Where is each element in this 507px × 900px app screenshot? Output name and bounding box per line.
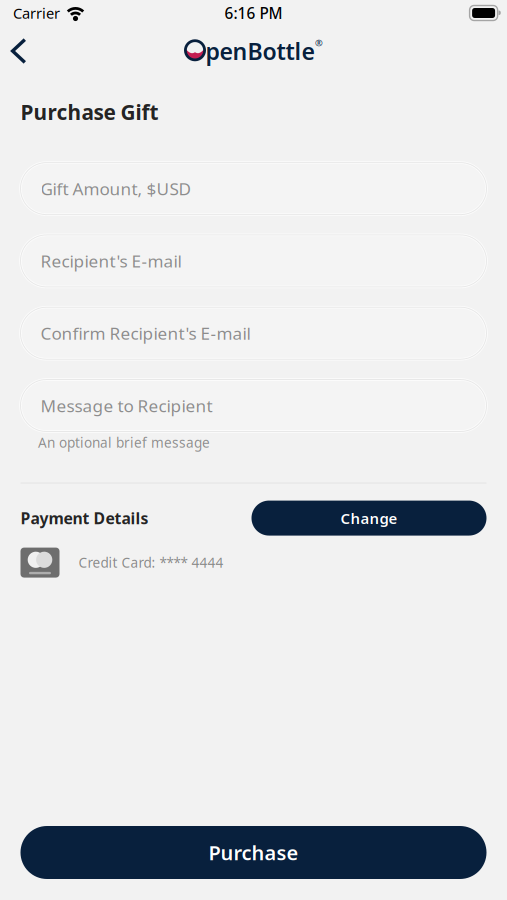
staticText: Credit Card: **** 4444: [78, 554, 223, 572]
button[interactable]: Message to Recipient: [20, 379, 486, 431]
staticText: An optional brief message: [38, 433, 210, 452]
staticText: Purchase: [208, 839, 298, 866]
staticText: Purchase Gift: [20, 98, 158, 126]
staticText: Message to Recipient: [40, 394, 212, 417]
staticText: Recipient's E-mail: [40, 249, 181, 272]
staticText: Change: [340, 508, 397, 528]
staticText: Gift Amount, $USD: [40, 177, 191, 200]
staticText: penBottle: [205, 36, 314, 66]
staticText: Payment Details: [20, 508, 148, 528]
button[interactable]: Gift Amount, $USD: [20, 163, 486, 215]
button[interactable]: Back: [0, 30, 40, 72]
button[interactable]: Confirm Recipient's E-mail: [20, 307, 486, 359]
button[interactable]: Recipient's E-mail: [20, 235, 486, 287]
staticText: 6:16 PM: [224, 3, 282, 23]
button[interactable]: Purchase: [20, 826, 486, 879]
staticText: ®: [315, 37, 323, 49]
staticText: Confirm Recipient's E-mail: [40, 322, 250, 345]
button[interactable]: Change: [251, 501, 486, 536]
staticText: Carrier: [13, 3, 60, 23]
